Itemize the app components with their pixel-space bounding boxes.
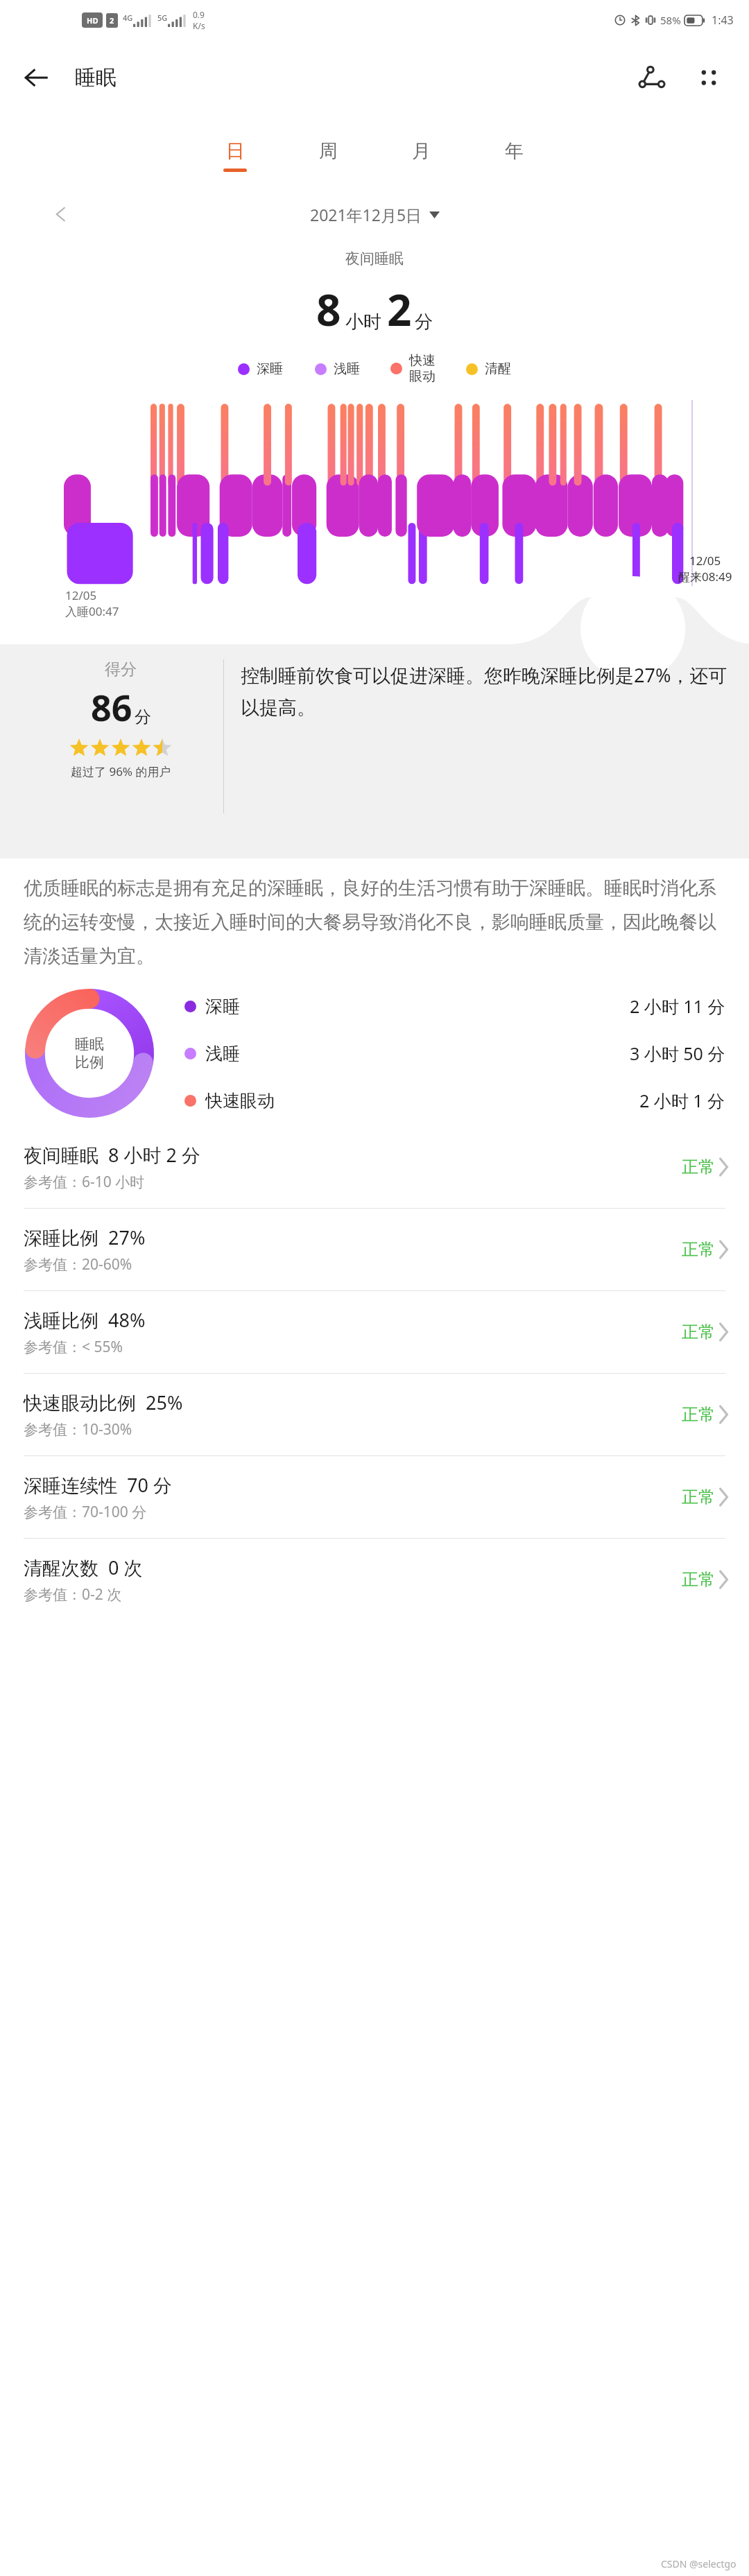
- staticText: 12/05: [689, 553, 721, 569]
- button[interactable]: 分享: [626, 51, 678, 104]
- staticText: 2: [110, 15, 114, 26]
- staticText: 正常: [682, 1569, 715, 1590]
- staticText: 小时: [345, 311, 381, 334]
- button[interactable]: 清醒次数 0 次: [0, 1539, 749, 1620]
- staticText: 正常: [682, 1404, 715, 1425]
- staticText: 参考值：70-100 分: [24, 1502, 147, 1522]
- staticText: 快速 眼动: [409, 352, 436, 385]
- button[interactable]: 月: [374, 122, 467, 189]
- staticText: 58%: [660, 13, 681, 27]
- staticText: 参考值：6-10 小时: [24, 1172, 145, 1192]
- staticText: 分: [415, 311, 433, 334]
- staticText: 控制睡前饮食可以促进深睡。您昨晚深睡比例是27%，还可以提高。: [241, 662, 731, 720]
- staticText: 3 小时 50 分: [630, 1041, 725, 1065]
- staticText: 浅睡: [334, 361, 360, 377]
- staticText: 8: [316, 280, 341, 338]
- staticText: 参考值：20-60%: [24, 1254, 132, 1274]
- staticText: 5G: [157, 12, 168, 23]
- staticText: 醒来08:49: [678, 569, 732, 585]
- staticText: 2 小时 1 分: [639, 1089, 725, 1112]
- button[interactable]: 快速眼动比例 25%: [0, 1374, 749, 1456]
- staticText: 浅睡: [205, 1043, 240, 1064]
- staticText: 月: [412, 139, 431, 163]
- staticText: 得分: [105, 659, 137, 680]
- staticText: 分: [135, 707, 151, 727]
- staticText: 深睡: [257, 361, 283, 377]
- staticText: 比例: [75, 1053, 104, 1071]
- staticText: 清醒: [485, 361, 511, 377]
- button[interactable]: 日: [189, 122, 282, 189]
- staticText: 夜间睡眠 8 小时 2 分: [24, 1142, 200, 1168]
- button[interactable]: 年: [467, 122, 560, 189]
- button[interactable]: 2021年12月5日: [310, 204, 440, 225]
- staticText: 睡眠: [75, 1035, 104, 1053]
- button[interactable]: 周: [282, 122, 374, 189]
- button[interactable]: 上一天: [42, 195, 80, 234]
- staticText: 2: [387, 280, 412, 338]
- staticText: 优质睡眠的标志是拥有充足的深睡眠，良好的生活习惯有助于深睡眠。睡眠时消化系统的运…: [24, 876, 725, 968]
- staticText: 快速眼动: [205, 1090, 275, 1112]
- staticText: K/s: [193, 20, 205, 31]
- staticText: 0.9: [193, 9, 205, 20]
- staticText: 深睡比例 27%: [24, 1225, 146, 1250]
- button[interactable]: 夜间睡眠 8 小时 2 分: [0, 1126, 749, 1209]
- staticText: 超过了 96% 的用户: [71, 763, 171, 779]
- staticText: 2 小时 11 分: [630, 994, 725, 1018]
- staticText: 快速眼动比例 25%: [24, 1390, 183, 1415]
- staticText: 正常: [682, 1157, 715, 1177]
- staticText: 2021年12月5日: [310, 204, 422, 225]
- button[interactable]: 返回: [11, 53, 61, 103]
- staticText: 参考值：10-30%: [24, 1419, 132, 1440]
- button[interactable]: 深睡比例 27%: [0, 1209, 749, 1291]
- staticText: 年: [505, 139, 524, 163]
- staticText: 夜间睡眠: [0, 250, 749, 268]
- staticText: 清醒次数 0 次: [24, 1555, 143, 1580]
- staticText: 正常: [682, 1487, 715, 1507]
- staticText: 86: [91, 682, 132, 732]
- staticText: 浅睡比例 48%: [24, 1307, 146, 1333]
- staticText: 1:43: [712, 12, 734, 28]
- staticText: HD: [87, 15, 98, 26]
- staticText: 正常: [682, 1322, 715, 1342]
- staticText: CSDN @selectgo: [661, 2557, 737, 2570]
- staticText: 深睡: [205, 996, 240, 1017]
- staticText: 深睡连续性 70 分: [24, 1472, 172, 1498]
- button[interactable]: 浅睡比例 48%: [0, 1291, 749, 1374]
- button[interactable]: 深睡连续性 70 分: [0, 1456, 749, 1539]
- staticText: 日: [226, 139, 245, 163]
- staticText: 12/05: [65, 587, 97, 603]
- staticText: 参考值：0-2 次: [24, 1584, 122, 1605]
- staticText: 周: [319, 139, 338, 163]
- staticText: 参考值：< 55%: [24, 1337, 123, 1357]
- button[interactable]: 更多: [682, 51, 735, 104]
- staticText: 正常: [682, 1239, 715, 1260]
- staticText: 睡眠: [75, 64, 117, 91]
- staticText: 入睡00:47: [65, 603, 119, 619]
- staticText: 4G: [123, 12, 133, 23]
